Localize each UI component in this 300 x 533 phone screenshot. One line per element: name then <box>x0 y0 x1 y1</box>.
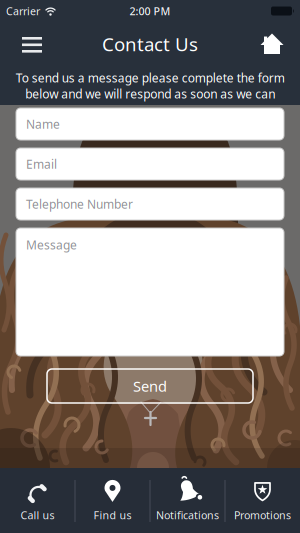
staticText: Send <box>133 376 167 396</box>
staticText: Call us <box>20 508 54 522</box>
staticText: Telephone Number <box>26 196 133 212</box>
staticText: Promotions <box>234 508 291 522</box>
staticText: Contact Us <box>102 32 198 56</box>
staticText: Find us <box>93 508 131 522</box>
staticText: Notifications <box>156 508 219 522</box>
staticText: Carrier <box>6 4 40 18</box>
staticText: Message <box>26 237 77 253</box>
staticText: 2:00 PM <box>129 4 170 18</box>
staticText: To send us a message please complete the… <box>15 70 284 102</box>
staticText: Email <box>26 156 57 172</box>
staticText: Name <box>26 116 60 132</box>
